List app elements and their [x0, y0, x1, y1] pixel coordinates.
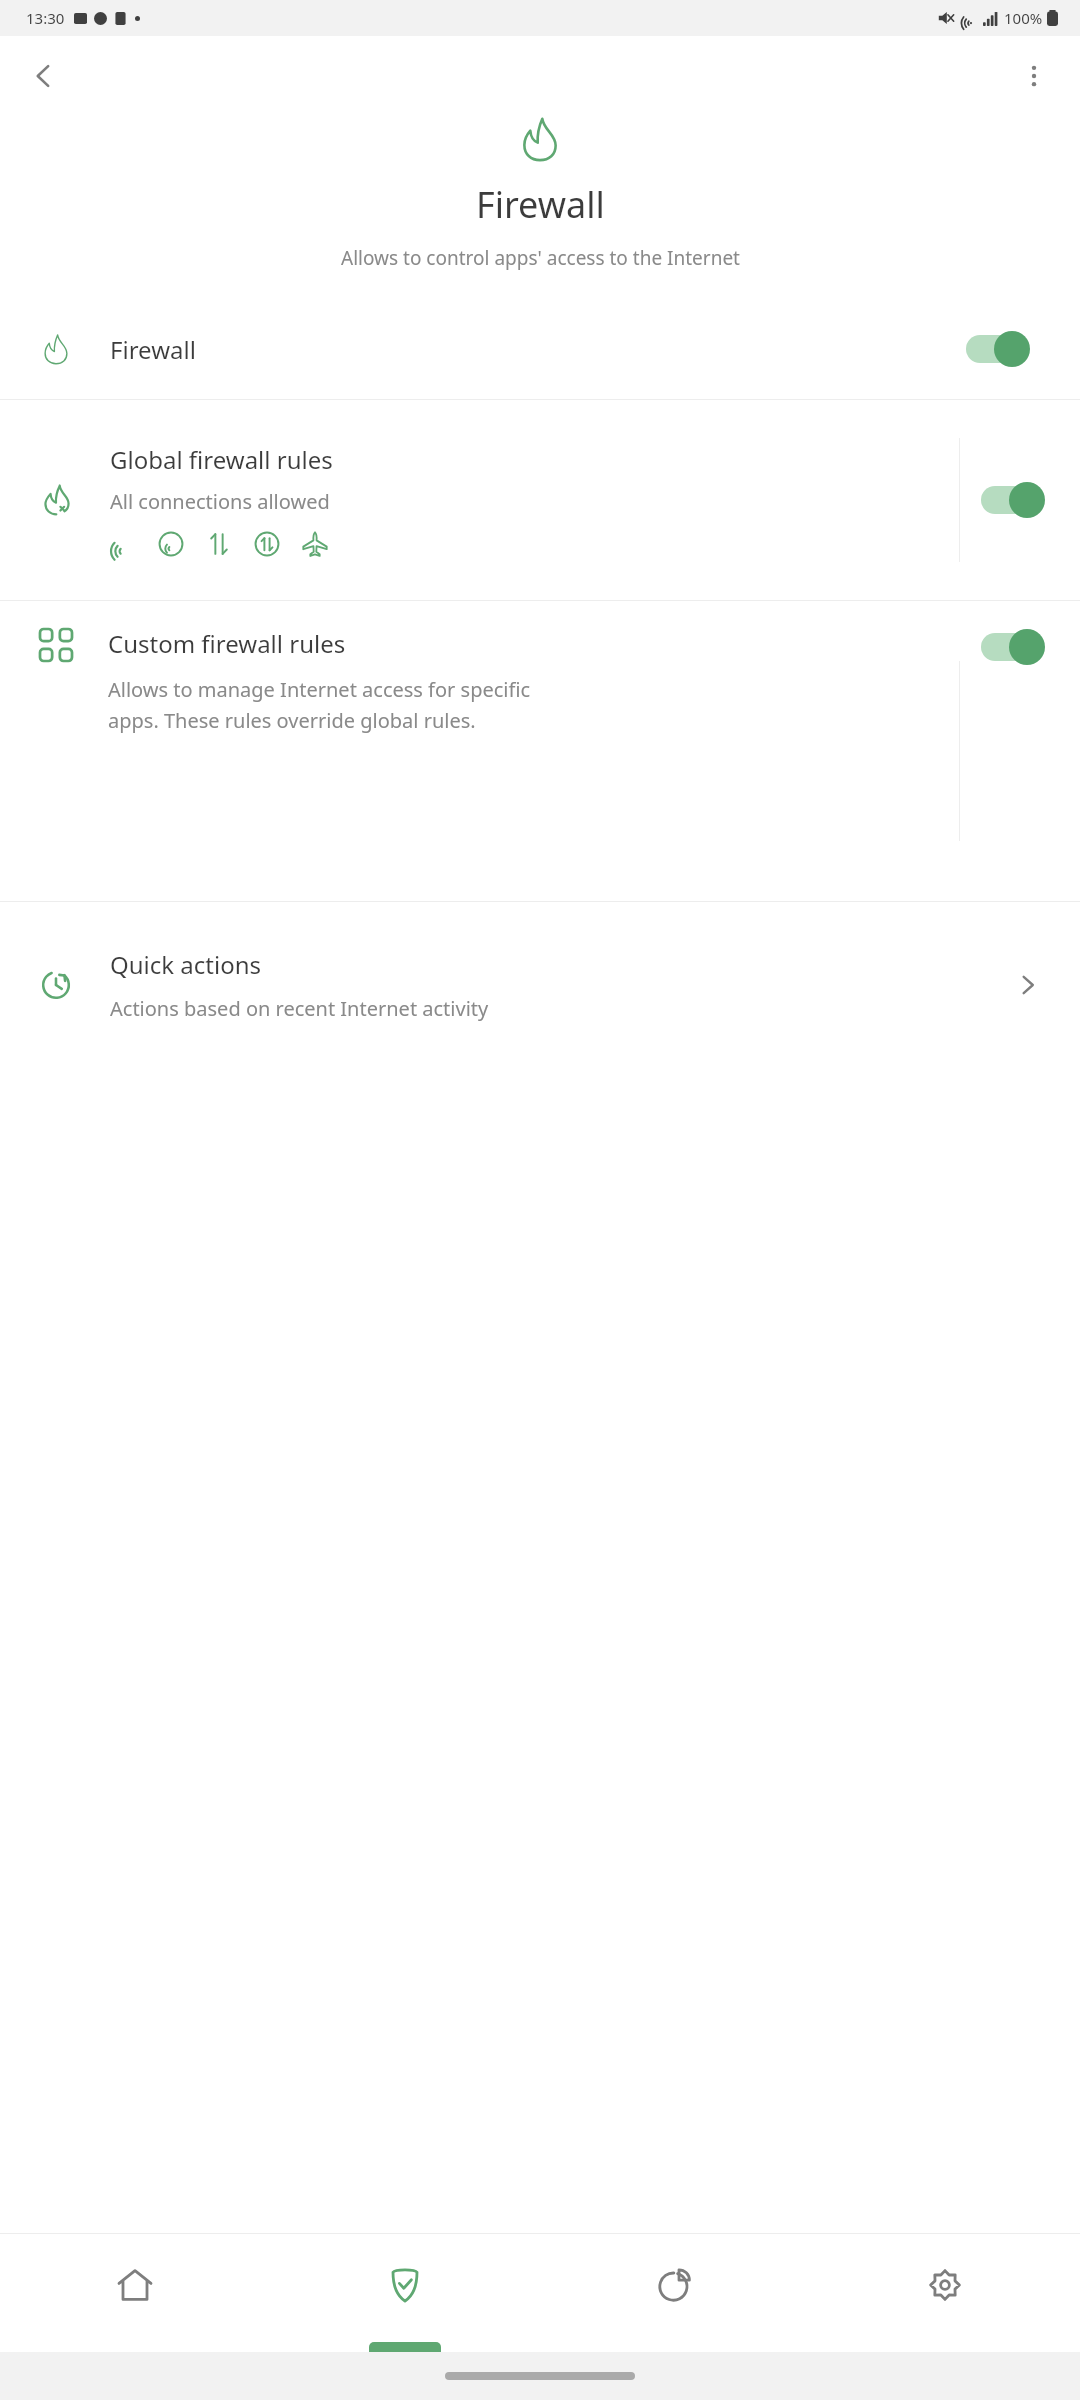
button[interactable]: Statistics [540, 2234, 810, 2352]
staticText: Firewall [476, 180, 605, 229]
button[interactable]: Home [0, 2234, 270, 2352]
button[interactable] [979, 480, 1061, 520]
staticText: Allows to manage Internet access for spe… [108, 676, 538, 733]
button[interactable]: Settings [810, 2234, 1080, 2352]
staticText: 100% [1004, 8, 1043, 28]
staticText: Actions based on recent Internet activit… [110, 995, 489, 1022]
button[interactable] [979, 627, 1061, 667]
staticText: Quick actions [110, 948, 262, 981]
button[interactable] [964, 329, 1046, 369]
staticText: Firewall [110, 333, 196, 366]
button[interactable]: Custom firewall rules [0, 601, 1080, 901]
button[interactable]: More options [1002, 44, 1066, 108]
staticText: Allows to control apps' access to the In… [341, 245, 740, 271]
staticText: Custom firewall rules [108, 627, 346, 660]
button[interactable]: Protection [270, 2234, 540, 2352]
staticText: Global firewall rules [110, 443, 333, 476]
button[interactable]: Firewall [0, 299, 1080, 399]
staticText: All connections allowed [110, 488, 330, 515]
button[interactable]: Back [12, 44, 76, 108]
button[interactable]: Global firewall rules [0, 400, 1080, 600]
button[interactable]: Quick actions [0, 902, 1080, 1067]
staticText: 13:30 [26, 8, 65, 28]
